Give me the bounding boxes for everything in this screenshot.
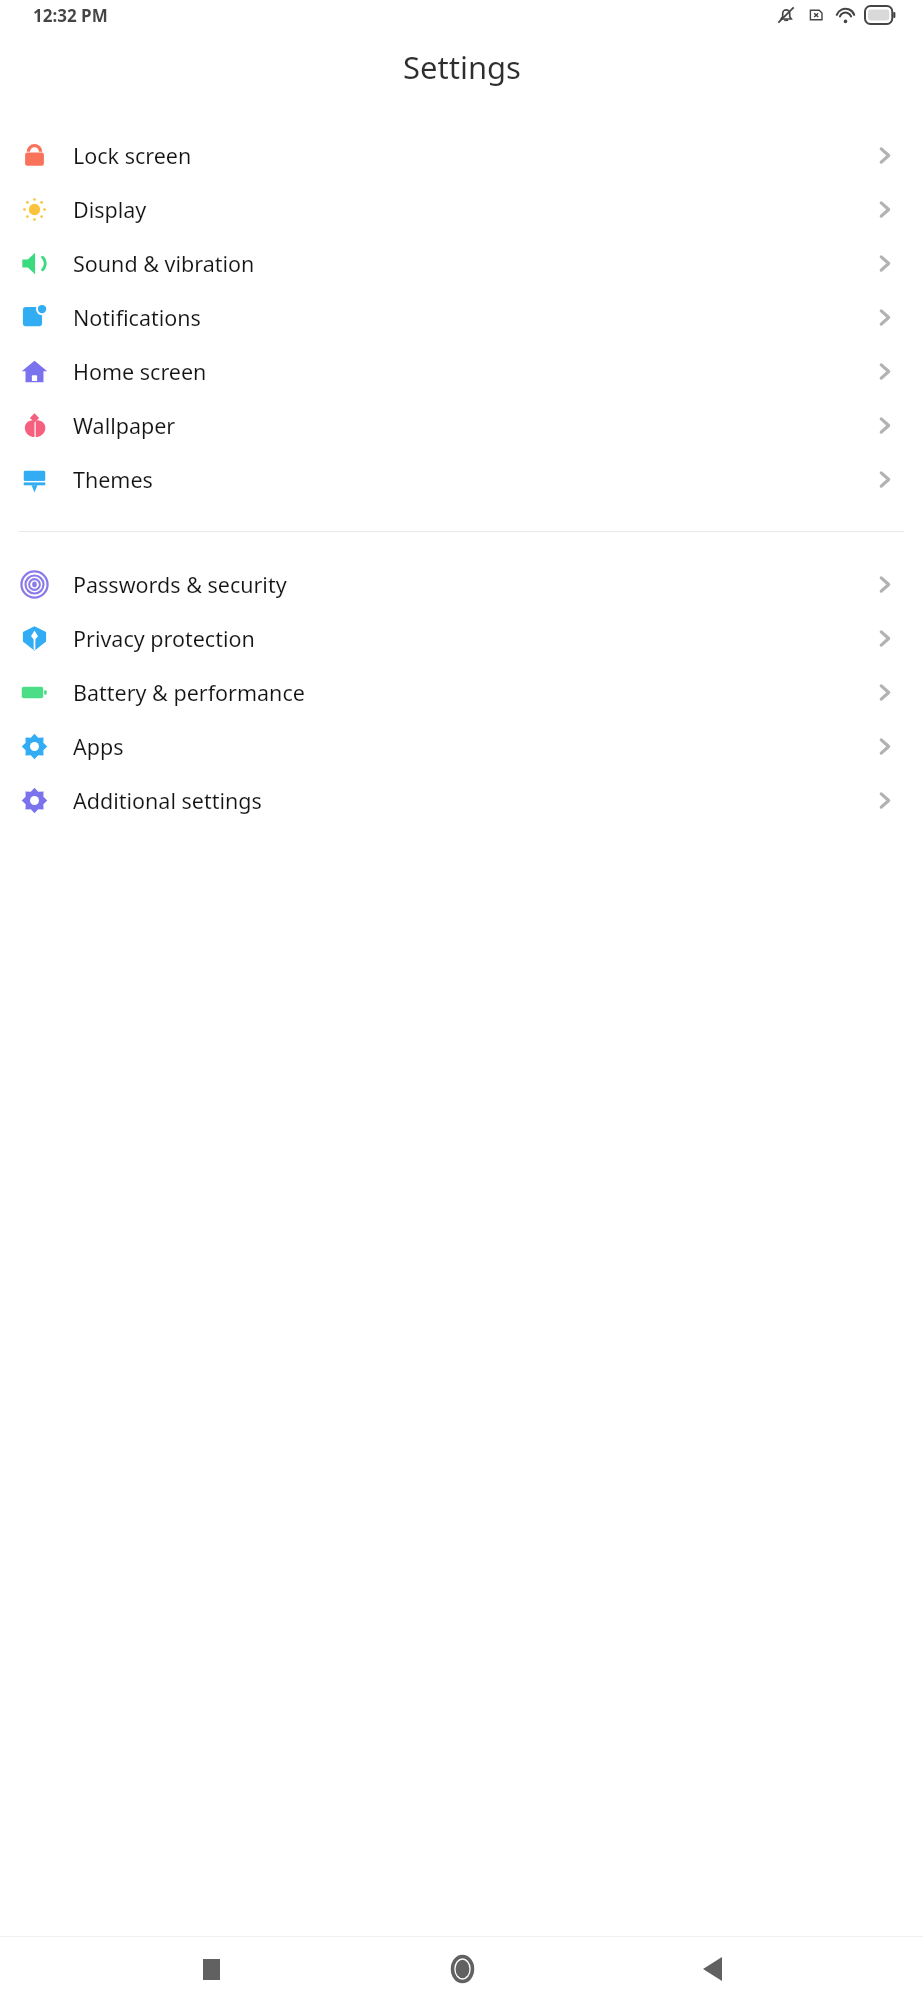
staticText: Sound & vibration [73,249,875,278]
button[interactable]: Recents [185,1943,237,1995]
button[interactable]: Home screen [0,344,923,398]
button[interactable]: Additional settings [0,773,923,827]
staticText: Apps [73,732,875,761]
button[interactable]: Privacy protection [0,611,923,665]
staticText: Wallpaper [73,411,875,440]
button[interactable]: Lock screen [0,128,923,182]
staticText: Battery & performance [73,678,875,707]
staticText: Lock screen [73,141,875,170]
staticText: Privacy protection [73,624,875,653]
staticText: Themes [73,465,875,494]
staticText: 12:32 PM [33,4,108,27]
button[interactable]: Back [686,1943,738,1995]
button[interactable]: Themes [0,452,923,506]
staticText: Home screen [73,357,875,386]
button[interactable]: Passwords & security [0,557,923,611]
button[interactable]: Notifications [0,290,923,344]
staticText: Additional settings [73,786,875,815]
staticText: Notifications [73,303,875,332]
button[interactable]: Sound & vibration [0,236,923,290]
button[interactable]: Apps [0,719,923,773]
button[interactable]: Home [436,1943,488,1995]
staticText: Display [73,195,875,224]
staticText: Settings [403,46,521,88]
button[interactable]: Battery & performance [0,665,923,719]
button[interactable]: Display [0,182,923,236]
button[interactable]: Wallpaper [0,398,923,452]
staticText: Passwords & security [73,570,875,599]
